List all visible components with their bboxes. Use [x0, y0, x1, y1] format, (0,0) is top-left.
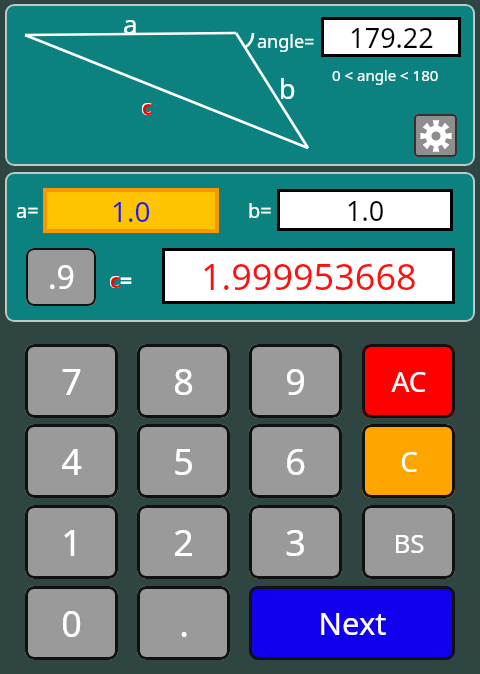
- button[interactable]: 7: [25, 344, 118, 418]
- staticText: b: [279, 70, 296, 107]
- staticText: c: [141, 93, 152, 122]
- button[interactable]: BS: [362, 505, 455, 579]
- staticText: 3: [285, 518, 306, 567]
- button[interactable]: 9: [249, 344, 342, 418]
- button[interactable]: 0: [25, 586, 118, 660]
- staticText: b=: [248, 197, 272, 224]
- staticText: AC: [391, 362, 427, 400]
- staticText: C: [400, 442, 418, 480]
- staticText: 0 < angle < 180: [332, 65, 439, 85]
- button[interactable]: 1.0: [43, 188, 219, 233]
- button[interactable]: 5: [137, 424, 230, 498]
- button[interactable]: AC: [362, 344, 455, 418]
- staticText: 2: [173, 518, 194, 567]
- staticText: angle=: [257, 29, 315, 54]
- button[interactable]: C: [362, 424, 455, 498]
- button[interactable]: 8: [137, 344, 230, 418]
- button[interactable]: .9: [26, 248, 96, 306]
- staticText: 1.0: [346, 192, 385, 229]
- staticText: 1.999953668: [201, 252, 417, 301]
- staticText: 5: [173, 437, 194, 486]
- staticText: 0: [61, 599, 82, 648]
- button[interactable]: 3: [249, 505, 342, 579]
- button[interactable]: 2: [137, 505, 230, 579]
- staticText: =: [120, 266, 133, 295]
- staticText: .: [179, 599, 189, 648]
- button[interactable]: .: [137, 586, 230, 660]
- button[interactable]: Next: [249, 586, 455, 660]
- button[interactable]: 6: [249, 424, 342, 498]
- staticText: 7: [61, 357, 82, 406]
- button[interactable]: 1: [25, 505, 118, 579]
- button[interactable]: 179.22: [321, 17, 461, 57]
- staticText: a=: [16, 197, 39, 224]
- staticText: c: [142, 94, 153, 121]
- staticText: 9: [285, 357, 306, 406]
- staticText: c: [110, 267, 121, 294]
- button[interactable]: Settings: [414, 114, 457, 157]
- staticText: 8: [173, 357, 194, 406]
- staticText: Next: [318, 602, 387, 644]
- button[interactable]: 4: [25, 424, 118, 498]
- staticText: 6: [285, 437, 306, 486]
- staticText: 4: [61, 437, 82, 486]
- staticText: 1.0: [111, 192, 151, 230]
- staticText: BS: [393, 525, 425, 560]
- staticText: 179.22: [349, 19, 434, 56]
- staticText: a: [123, 6, 138, 41]
- staticText: 1: [61, 518, 82, 567]
- button[interactable]: 1.0: [277, 189, 453, 231]
- staticText: .9: [48, 255, 75, 299]
- staticText: c: [109, 266, 120, 295]
